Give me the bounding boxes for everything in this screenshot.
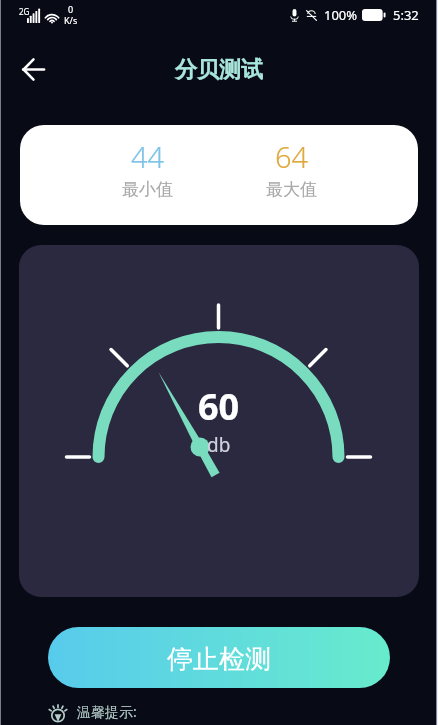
staticText: 最大值 <box>266 179 317 200</box>
staticText: 44 <box>131 137 165 176</box>
staticText: 5:32 <box>393 6 419 24</box>
button[interactable]: 44 <box>20 125 418 225</box>
staticText: 64 <box>275 137 309 176</box>
staticText: K/s <box>64 14 78 26</box>
staticText: 最小值 <box>122 179 173 200</box>
staticText: 0 <box>68 3 74 15</box>
staticText: 60 <box>198 382 240 431</box>
staticText: 2G <box>19 6 30 17</box>
button[interactable]: Back <box>12 48 54 90</box>
staticText: 温馨提示: <box>77 702 137 721</box>
staticText: 分贝测试 <box>175 56 263 84</box>
staticText: db <box>207 432 231 458</box>
staticText: 100% <box>324 6 358 24</box>
staticText: 停止检测 <box>167 643 271 676</box>
button[interactable]: 停止检测 <box>48 627 390 688</box>
